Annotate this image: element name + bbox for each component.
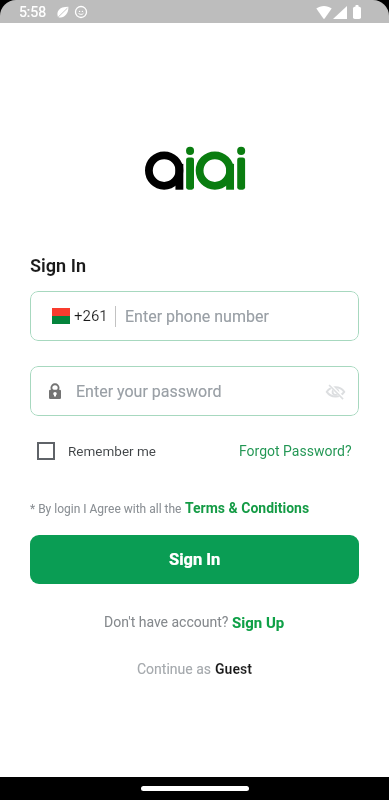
button[interactable]: Sign In <box>30 535 359 584</box>
staticText: Sign In <box>30 255 87 276</box>
staticText: Remember me <box>68 443 156 459</box>
staticText: Sign In <box>169 550 221 569</box>
button[interactable]: Show password <box>317 373 353 409</box>
button[interactable]: Remember me <box>37 442 156 460</box>
staticText: Enter phone number <box>125 307 269 326</box>
button[interactable]: Terms & Conditions <box>185 500 310 516</box>
staticText: Enter your password <box>76 382 222 401</box>
staticText: 5:58 <box>19 4 46 20</box>
staticText: Continue as <box>137 661 215 677</box>
staticText: * By login I Agree with all the <box>30 502 185 516</box>
button[interactable]: Enter your password <box>30 366 359 416</box>
staticText: Don't have account? <box>104 614 232 630</box>
button[interactable]: Continue as <box>0 661 389 677</box>
staticText: Guest <box>215 661 252 677</box>
button[interactable]: Forgot Password? <box>239 443 352 459</box>
button[interactable]: Sign Up <box>232 614 285 632</box>
staticText: +261 <box>74 307 108 325</box>
button[interactable]: +261 <box>30 291 359 341</box>
